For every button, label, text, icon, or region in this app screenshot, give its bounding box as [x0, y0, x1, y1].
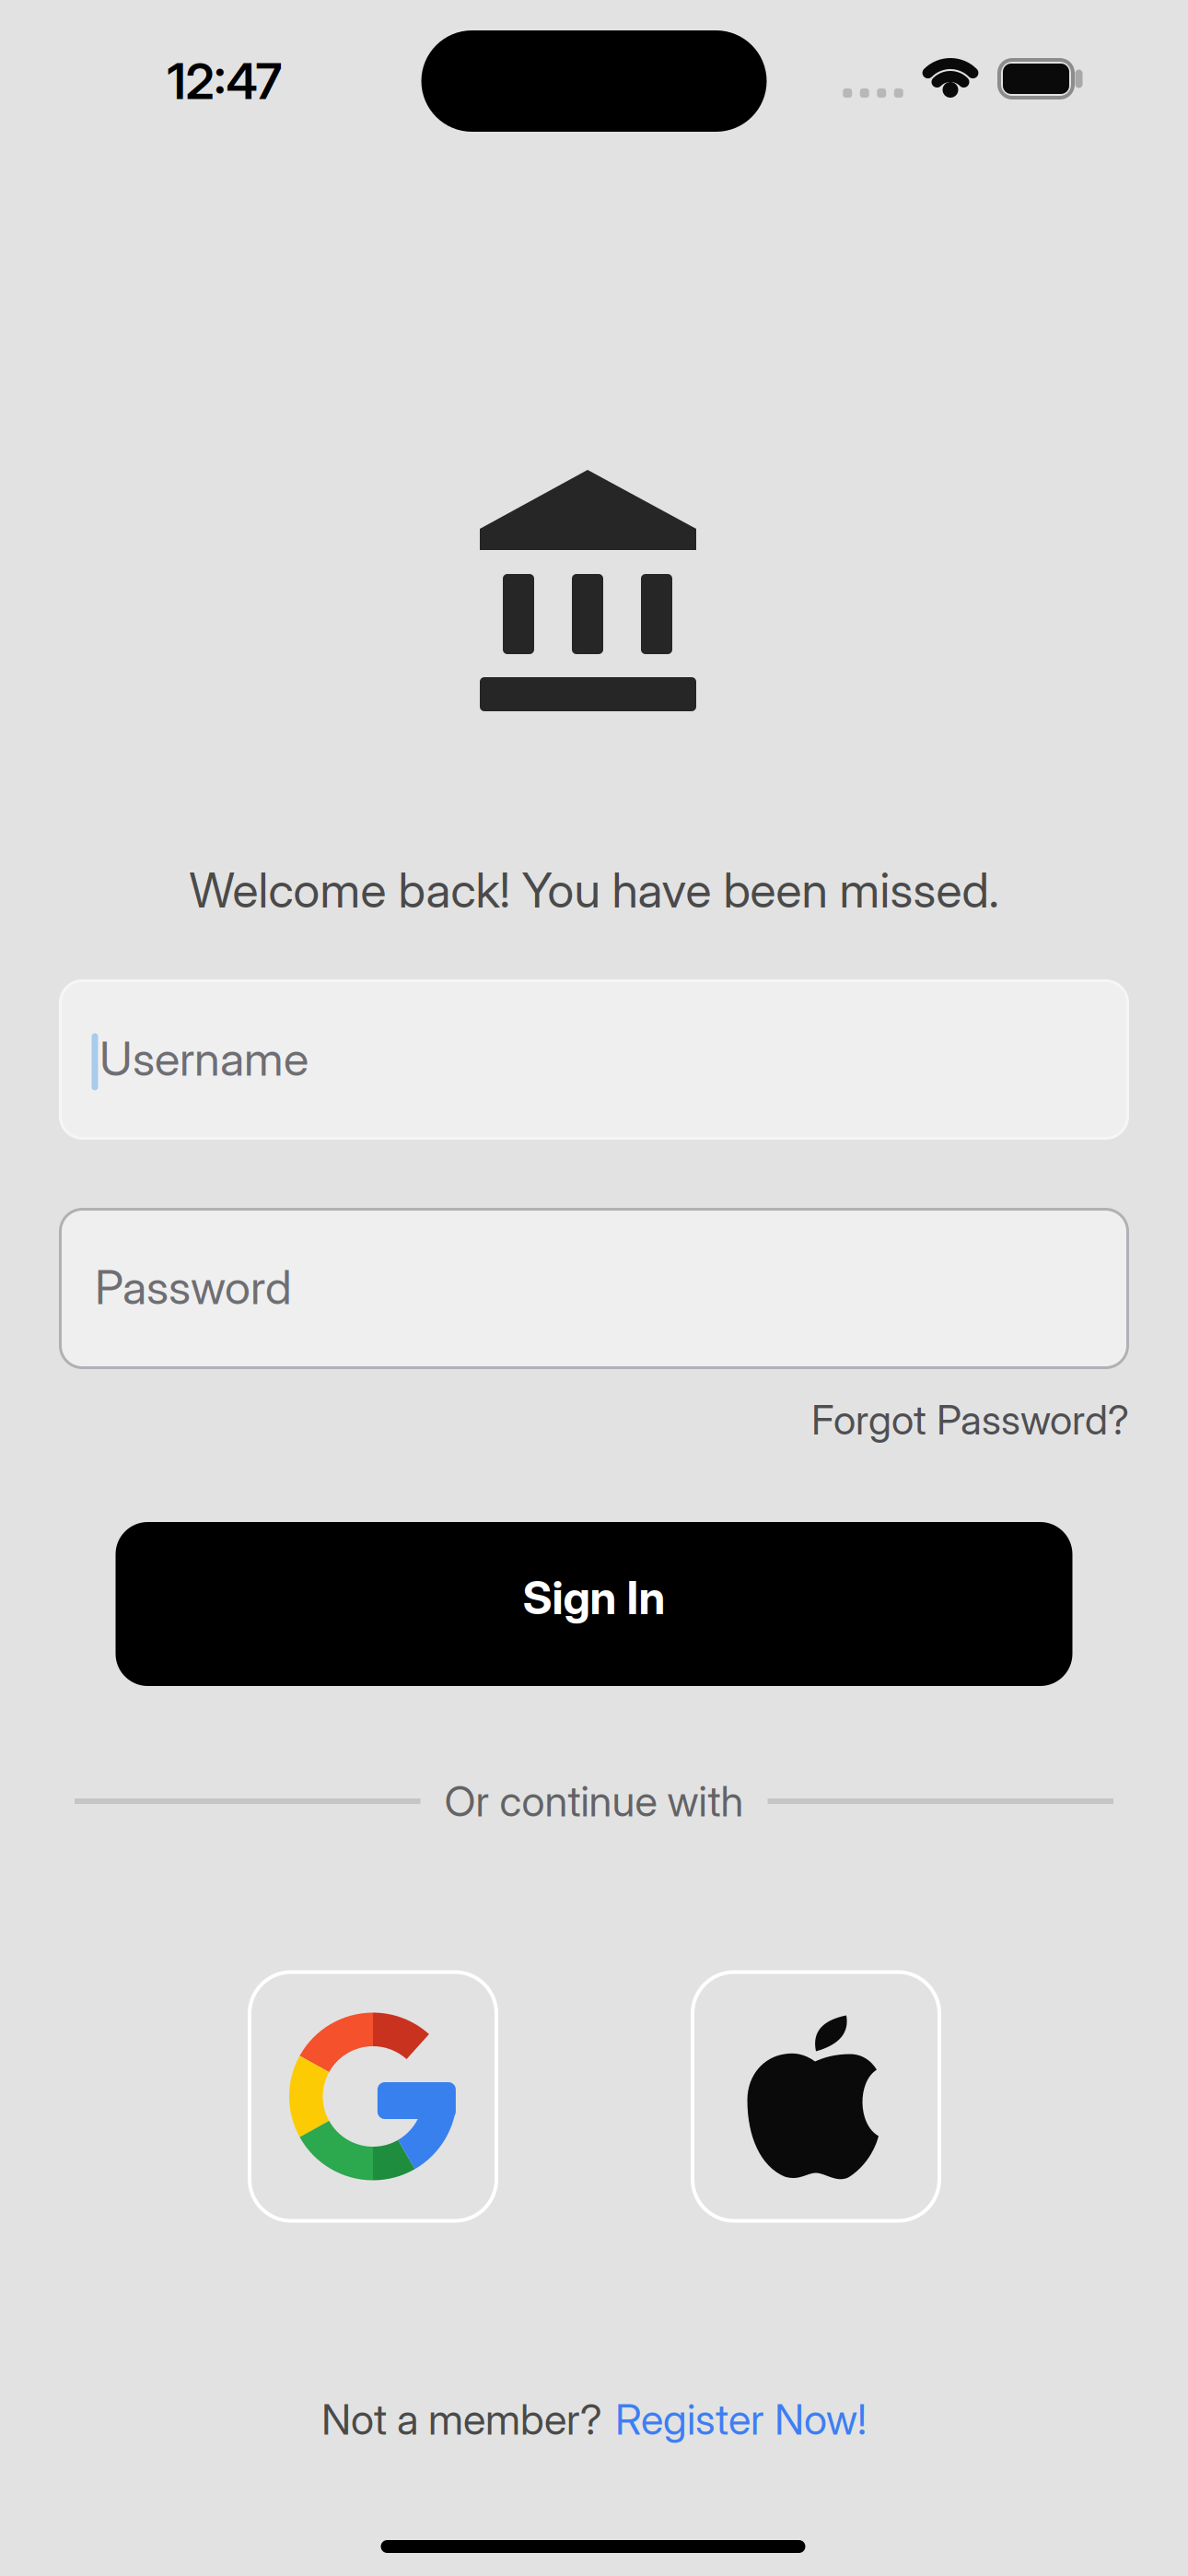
staticText: Forgot Password? [811, 1396, 1129, 1444]
button[interactable]: Sign in with Google [248, 1970, 498, 2223]
staticText: Sign In [523, 1571, 665, 1624]
staticText: Or continue with [444, 1777, 744, 1826]
button[interactable]: Username [59, 979, 1129, 1140]
button[interactable]: Forgot Password? [811, 1396, 1129, 1444]
staticText: Username [99, 1031, 309, 1086]
button[interactable]: Register Now! [615, 2395, 867, 2444]
button[interactable]: Sign In [116, 1522, 1072, 1686]
staticText: 12:47 [167, 52, 282, 110]
button[interactable]: Sign in with Apple [691, 1970, 941, 2223]
staticText: Welcome back! You have been missed. [189, 862, 999, 918]
staticText: Password [95, 1260, 292, 1315]
staticText: Register Now! [615, 2395, 867, 2444]
button[interactable]: Password [59, 1208, 1129, 1369]
staticText: Not a member? [321, 2395, 602, 2444]
